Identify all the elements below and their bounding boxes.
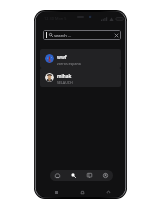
staticText: search ... bbox=[54, 33, 72, 39]
button[interactable]: Search bbox=[65, 170, 81, 181]
staticText: zorros espana bbox=[57, 61, 81, 66]
button[interactable]: Recents bbox=[53, 189, 60, 196]
button[interactable]: Messages bbox=[81, 170, 97, 181]
button[interactable]: Home bbox=[50, 170, 65, 181]
staticText: SELAUCH bbox=[57, 80, 73, 85]
staticText: 12:30 Mon 5 bbox=[44, 16, 67, 21]
staticText: mihak bbox=[57, 73, 72, 79]
button[interactable]: Profile bbox=[97, 170, 113, 181]
staticText: wwf bbox=[57, 54, 67, 60]
button[interactable]: wwf bbox=[40, 49, 121, 68]
button[interactable]: search ... bbox=[43, 30, 121, 40]
button[interactable]: mihak bbox=[40, 68, 121, 87]
button[interactable]: Back bbox=[105, 189, 112, 196]
button[interactable]: Home bbox=[79, 189, 86, 196]
button[interactable]: Clear search bbox=[113, 32, 119, 38]
